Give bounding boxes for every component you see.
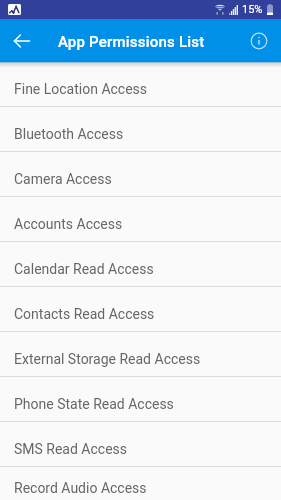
staticText: External Storage Read Access	[14, 351, 201, 367]
staticText: Accounts Access	[14, 216, 123, 232]
button[interactable]: Calendar Read Access	[0, 242, 281, 286]
staticText: 15%	[242, 3, 263, 16]
staticText: Camera Access	[14, 171, 112, 187]
button[interactable]: Back	[6, 25, 38, 57]
button[interactable]: Camera Access	[0, 152, 281, 196]
button[interactable]: Phone State Read Access	[0, 377, 281, 421]
button[interactable]: Contacts Read Access	[0, 287, 281, 331]
staticText: Contacts Read Access	[14, 306, 155, 322]
button[interactable]: SMS Read Access	[0, 422, 281, 466]
button[interactable]: Accounts Access	[0, 197, 281, 241]
staticText: SMS Read Access	[14, 441, 128, 457]
staticText: Bluetooth Access	[14, 126, 124, 142]
staticText: App Permissions List	[58, 33, 205, 51]
button[interactable]: Fine Location Access	[0, 62, 281, 106]
staticText: Phone State Read Access	[14, 396, 174, 412]
button[interactable]: External Storage Read Access	[0, 332, 281, 376]
button[interactable]: Bluetooth Access	[0, 107, 281, 151]
staticText: Fine Location Access	[14, 81, 148, 97]
button[interactable]: Record Audio Access	[0, 467, 281, 500]
staticText: Calendar Read Access	[14, 261, 154, 277]
button[interactable]: Info	[244, 26, 274, 56]
staticText: Record Audio Access	[14, 480, 147, 496]
